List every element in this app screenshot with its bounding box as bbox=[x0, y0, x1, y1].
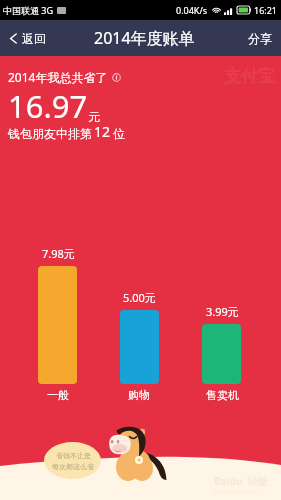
staticText: 0.04K/s bbox=[176, 4, 208, 16]
staticText: 一般 bbox=[47, 388, 69, 402]
staticText: 返回 bbox=[22, 31, 46, 46]
button[interactable] bbox=[120, 310, 159, 384]
staticText: 3.99元 bbox=[206, 304, 239, 319]
staticText: 钱包朋友中排第 bbox=[8, 126, 92, 141]
staticText: 支付宝 bbox=[224, 66, 275, 87]
button[interactable] bbox=[38, 266, 77, 384]
staticText: 12 bbox=[94, 122, 111, 141]
staticText: 2014年我总共省了 bbox=[8, 69, 108, 85]
staticText: 元 bbox=[88, 109, 100, 124]
staticText: 购物 bbox=[128, 388, 150, 402]
staticText: 7.98元 bbox=[42, 246, 75, 261]
staticText: 16:21 bbox=[254, 4, 278, 16]
button[interactable]: 返回 bbox=[0, 23, 54, 54]
staticText: 位 bbox=[113, 126, 125, 141]
staticText: 2014年度账单 bbox=[94, 27, 195, 49]
staticText: 省钱不止是 bbox=[56, 451, 91, 460]
staticText: 售卖机 bbox=[206, 388, 239, 402]
staticText: 中国联通 3G bbox=[3, 4, 54, 16]
staticText: Baidu 经验 bbox=[214, 474, 268, 488]
staticText: 5.00元 bbox=[123, 290, 156, 305]
button[interactable] bbox=[202, 324, 241, 384]
button[interactable]: Info bbox=[112, 73, 121, 82]
staticText: 16.97 bbox=[8, 85, 88, 127]
staticText: 每次都这么省 bbox=[52, 462, 94, 471]
staticText: 分享 bbox=[248, 31, 272, 46]
button[interactable]: 分享 bbox=[240, 23, 281, 54]
